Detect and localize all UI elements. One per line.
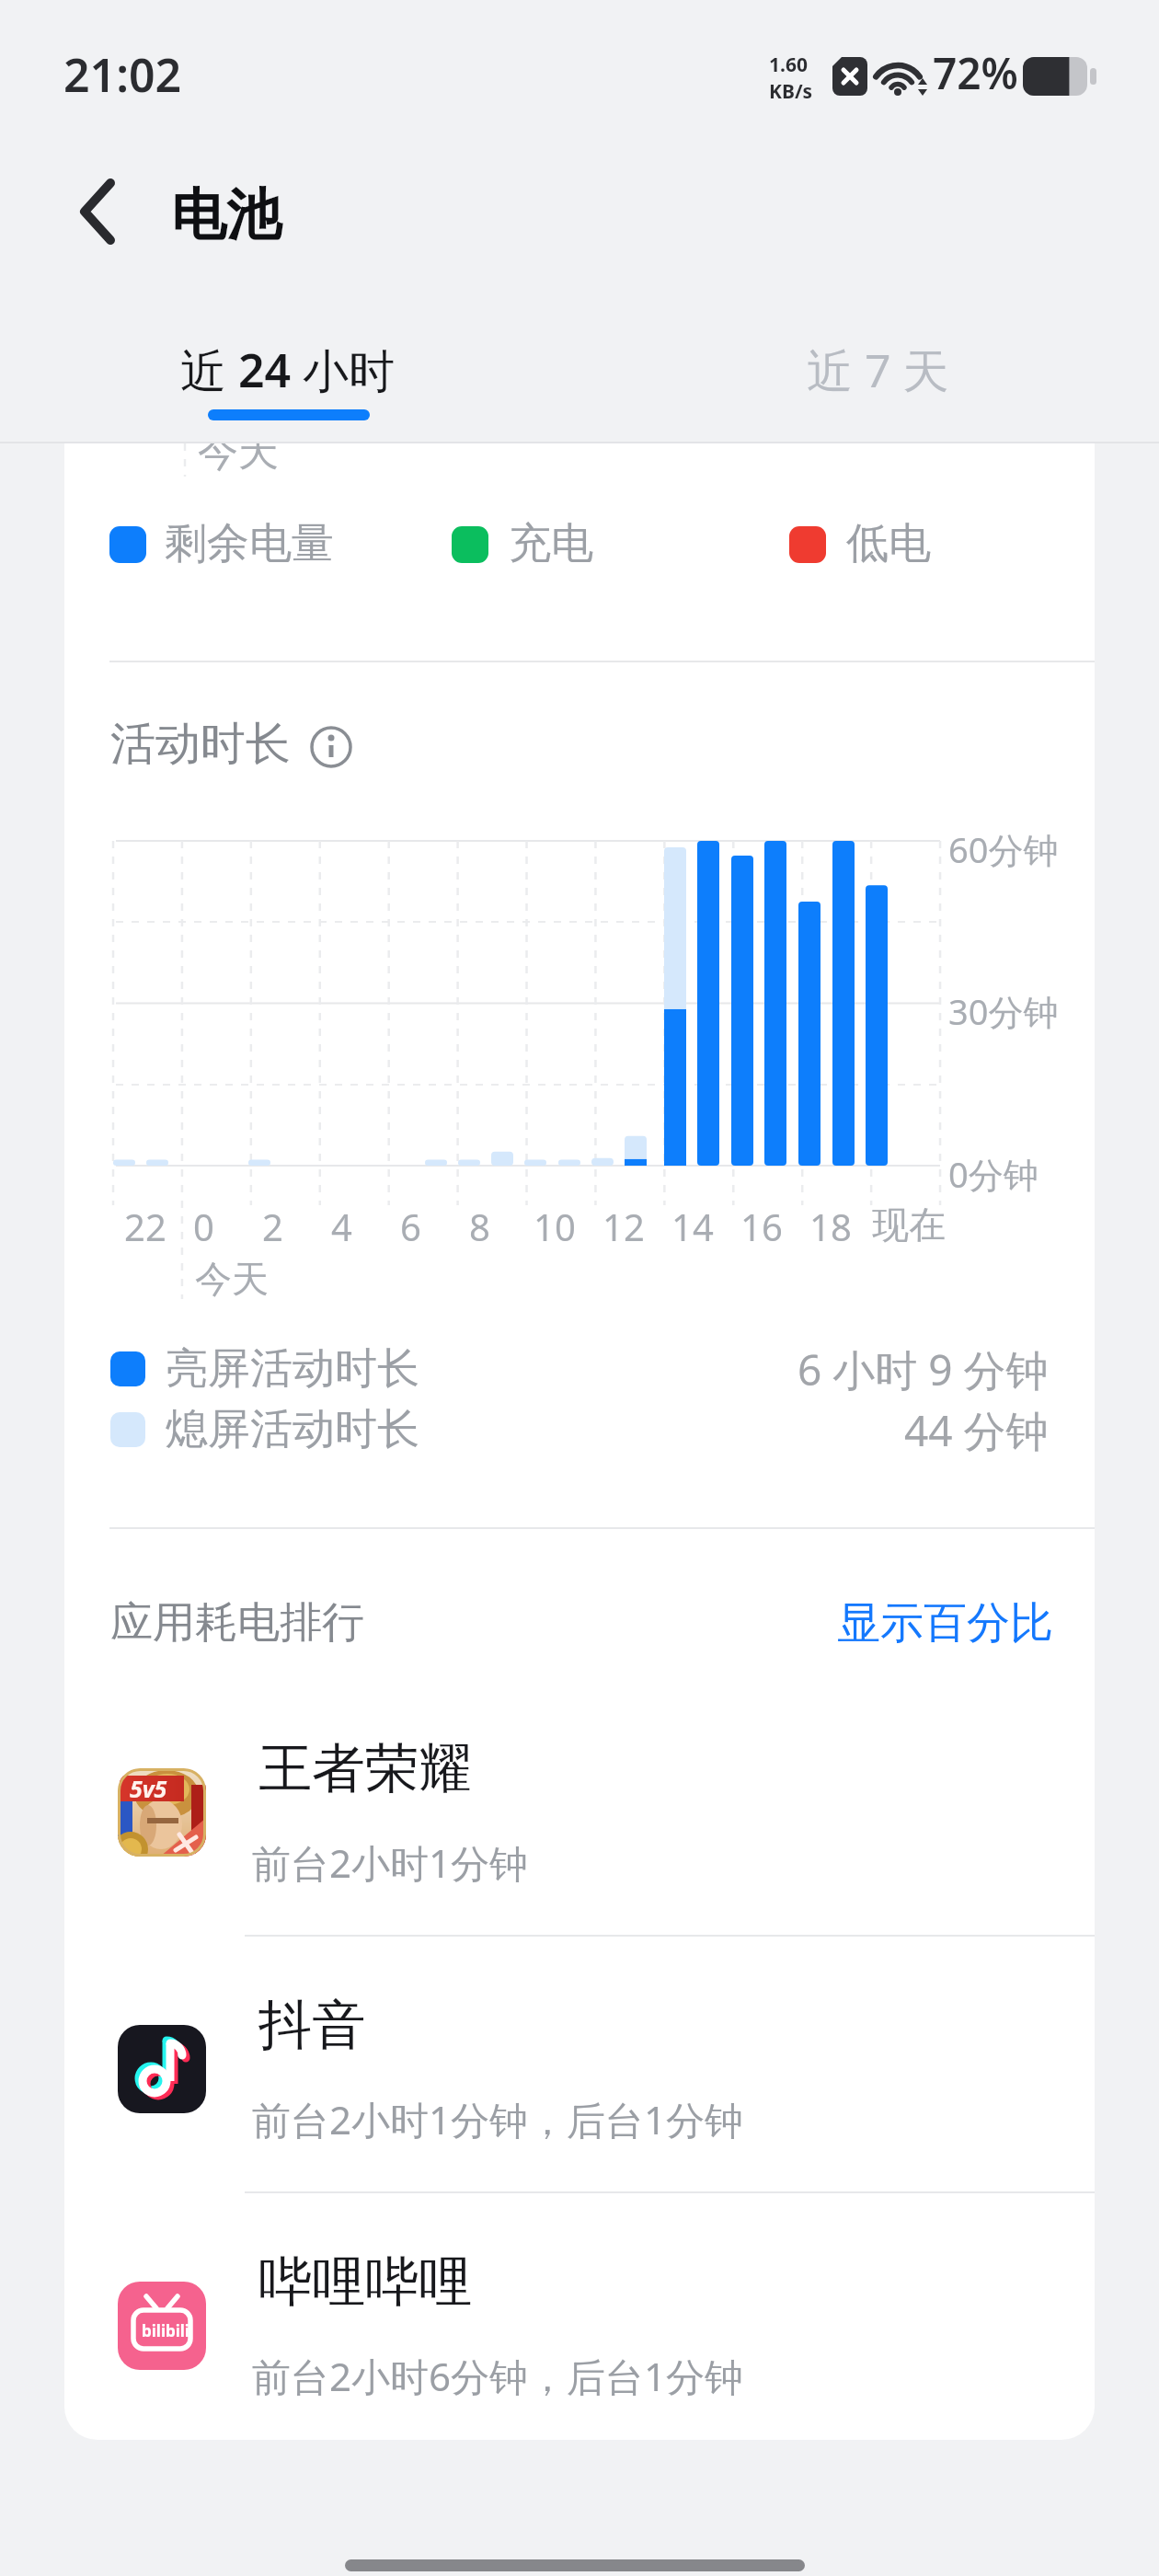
staticText: 6 小时 9 分钟 xyxy=(798,1340,1049,1397)
staticText: 前台2小时1分钟 xyxy=(252,1836,529,1889)
button[interactable]: 近 7 天 xyxy=(791,327,966,428)
staticText: 王者荣耀 xyxy=(258,1735,472,1802)
staticText: 今天 xyxy=(195,1256,269,1302)
staticText: 活动时长 xyxy=(110,716,291,773)
staticText: 前台2小时6分钟，后台1分钟 xyxy=(252,2350,744,2402)
staticText: 10 xyxy=(534,1202,576,1251)
staticText: 72% xyxy=(933,44,1018,102)
staticText: 4 xyxy=(331,1202,352,1251)
staticText: 60分钟 xyxy=(948,825,1059,873)
staticText: 哔哩哔哩 xyxy=(258,2248,472,2316)
staticText: 近 7 天 xyxy=(807,339,949,401)
staticText: 充电 xyxy=(509,517,593,570)
staticText: 今天 xyxy=(198,443,279,477)
staticText: KB/s xyxy=(769,78,813,105)
button[interactable] xyxy=(304,719,359,775)
staticText: 8 xyxy=(469,1202,490,1251)
staticText: 近 24 小时 xyxy=(180,339,396,401)
staticText: 0分钟 xyxy=(948,1150,1039,1198)
staticText: 22 xyxy=(124,1202,166,1251)
staticText: 熄屏活动时长 xyxy=(166,1403,419,1456)
staticText: 1.60 xyxy=(769,52,808,78)
button[interactable]: bilibili xyxy=(64,2248,1095,2440)
button[interactable]: 5v5 xyxy=(64,1735,1095,1976)
staticText: 电池 xyxy=(171,180,281,250)
staticText: 18 xyxy=(809,1202,852,1251)
staticText: 应用耗电排行 xyxy=(110,1596,364,1650)
staticText: 21:02 xyxy=(63,43,182,106)
button[interactable]: 显示百分比 xyxy=(837,1596,1053,1650)
staticText: 剩余电量 xyxy=(165,517,334,570)
button[interactable]: 抖音 xyxy=(64,1992,1095,2233)
staticText: 2 xyxy=(262,1202,283,1251)
staticText: 低电 xyxy=(846,517,931,570)
staticText: 44 分钟 xyxy=(904,1401,1049,1458)
staticText: 16 xyxy=(740,1202,783,1251)
button[interactable]: 近 24 小时 xyxy=(166,327,414,428)
staticText: 0 xyxy=(193,1202,214,1251)
staticText: 抖音 xyxy=(258,1992,365,2059)
staticText: bilibili xyxy=(142,2320,189,2341)
staticText: 12 xyxy=(602,1202,645,1251)
staticText: 前台2小时1分钟，后台1分钟 xyxy=(252,2093,744,2145)
staticText: 现在 xyxy=(872,1202,946,1248)
staticText: 6 xyxy=(400,1202,421,1251)
staticText: 5v5 xyxy=(130,1773,167,1804)
staticText: 30分钟 xyxy=(948,987,1059,1035)
staticText: 14 xyxy=(671,1202,714,1251)
staticText: 亮屏活动时长 xyxy=(166,1342,419,1396)
button[interactable] xyxy=(57,166,140,258)
